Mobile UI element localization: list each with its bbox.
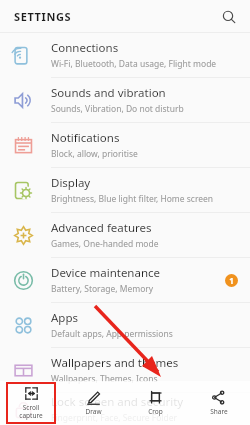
button[interactable]: Lock screen and security (0, 393, 250, 425)
button[interactable]: Apps (0, 303, 250, 348)
button[interactable]: Wallpapers and themes (0, 348, 250, 393)
staticText: Crop (148, 407, 163, 416)
staticText: Brightness, Blue light filter, Home scre… (51, 193, 214, 205)
button[interactable]: Notifications (0, 123, 250, 168)
staticText: Connections (51, 40, 119, 56)
staticText: Games, One-handed mode (51, 238, 159, 250)
staticText: Device maintenance (51, 265, 161, 281)
staticText: Lock screen and security (51, 394, 184, 410)
staticText: Draw (85, 407, 102, 416)
staticText: Fingerprint, Face, Secure Folder (51, 412, 178, 424)
button[interactable]: Advanced features (0, 213, 250, 258)
button[interactable]: Device maintenance (0, 258, 250, 303)
staticText: Wallpapers, Themes, Icons (51, 373, 158, 385)
button[interactable]: Crop (124, 381, 187, 425)
button[interactable]: Sounds and vibration (0, 78, 250, 123)
staticText: Block, allow, prioritise (51, 148, 138, 160)
button[interactable]: Draw (62, 381, 124, 425)
staticText: Battery, Storage, Memory (51, 283, 154, 295)
staticText: Display (51, 175, 91, 191)
button[interactable]: Scroll capture (0, 381, 62, 425)
button[interactable]: Search (217, 5, 241, 29)
staticText: Notifications (51, 130, 120, 146)
staticText: Sounds, Vibration, Do not disturb (51, 103, 184, 115)
staticText: Sounds and vibration (51, 85, 166, 101)
button[interactable]: Display (0, 168, 250, 213)
staticText: Default apps, App permissions (51, 328, 173, 340)
staticText: Share (210, 407, 228, 416)
button[interactable]: Share (187, 381, 250, 425)
staticText: 1 (229, 275, 234, 286)
staticText: Scroll capture (19, 403, 43, 420)
staticText: Advanced features (51, 220, 152, 236)
staticText: Apps (51, 310, 79, 326)
button[interactable]: Connections (0, 33, 250, 78)
staticText: Wallpapers and themes (51, 355, 179, 371)
staticText: SETTINGS (14, 9, 72, 24)
staticText: Wi-Fi, Bluetooth, Data usage, Flight mod… (51, 58, 217, 70)
